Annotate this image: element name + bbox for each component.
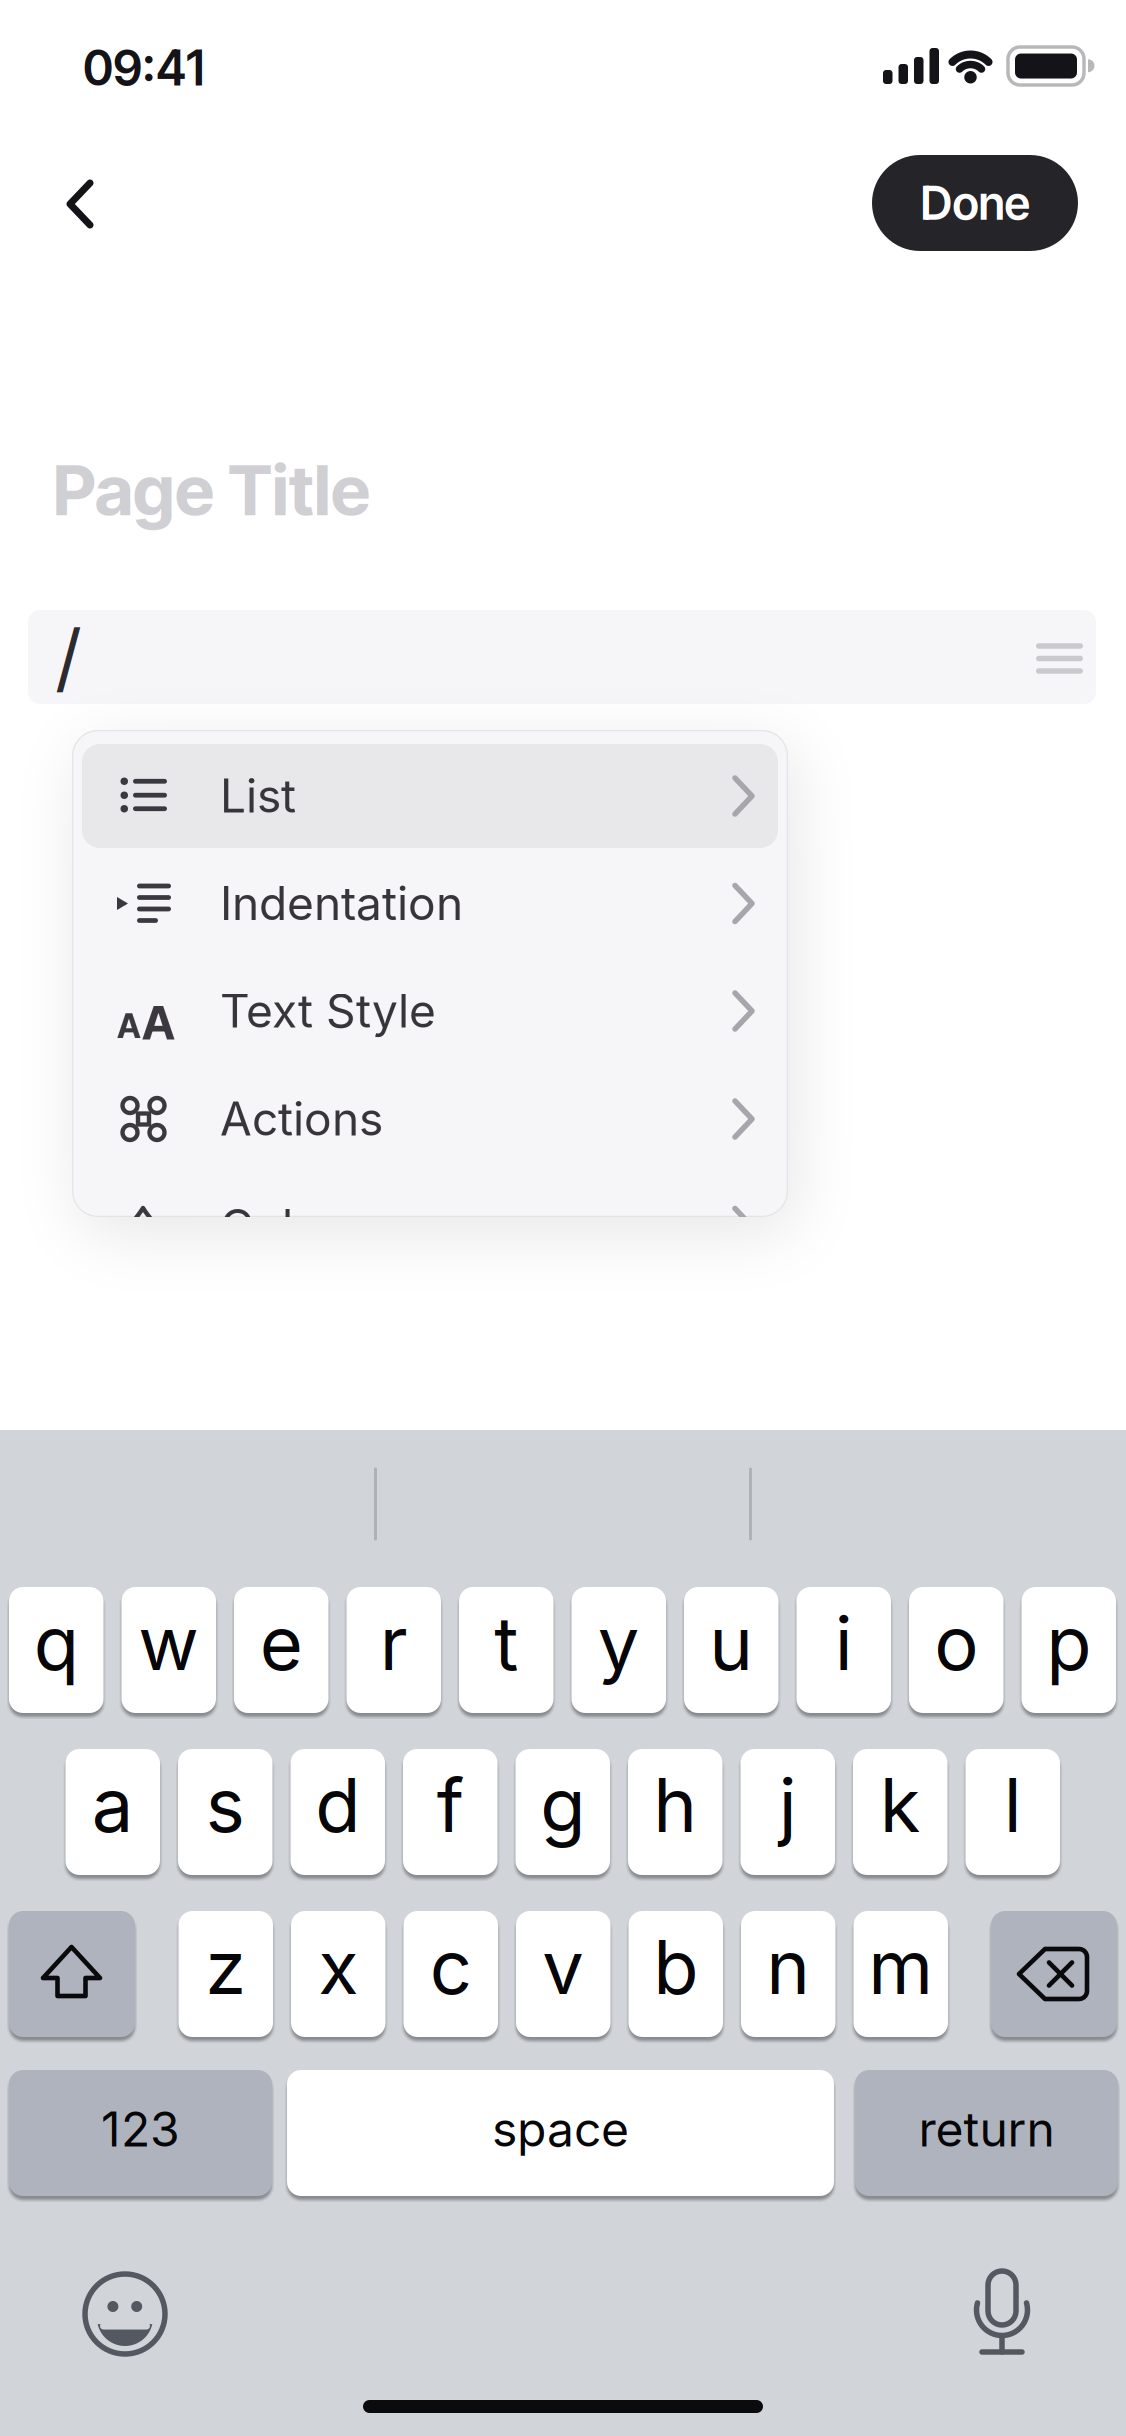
staticText: b <box>653 1922 698 2012</box>
button[interactable]: w <box>121 1587 216 1713</box>
staticText: s <box>206 1760 245 1850</box>
staticText: g <box>540 1760 585 1850</box>
button[interactable]: r <box>346 1587 441 1713</box>
button[interactable]: Emoji <box>70 2259 180 2369</box>
button[interactable]: Color <box>82 1174 778 1278</box>
staticText: t <box>494 1598 518 1688</box>
button[interactable]: u <box>684 1587 778 1713</box>
staticText: y <box>598 1598 640 1688</box>
staticText: o <box>934 1598 978 1688</box>
button[interactable]: Text Style <box>82 959 778 1063</box>
button[interactable]: List <box>82 744 778 848</box>
staticText: e <box>260 1598 303 1688</box>
staticText: d <box>315 1760 360 1850</box>
staticText: u <box>709 1598 753 1688</box>
button[interactable]: k <box>853 1749 947 1875</box>
button[interactable]: q <box>9 1587 103 1713</box>
staticText: n <box>766 1922 810 2012</box>
staticText: Done <box>920 175 1029 231</box>
button[interactable]: 123 <box>9 2070 272 2196</box>
button[interactable]: o <box>909 1587 1003 1713</box>
button[interactable]: Shift <box>9 1911 135 2037</box>
staticText: A <box>142 995 175 1051</box>
button[interactable]: t <box>459 1587 553 1713</box>
staticText: c <box>430 1922 472 2012</box>
staticText: Page Title <box>53 448 370 532</box>
staticText: return <box>918 2100 1054 2158</box>
staticText: z <box>205 1922 246 2012</box>
button[interactable]: v <box>516 1911 610 2037</box>
button[interactable]: y <box>571 1587 666 1713</box>
button[interactable]: g <box>515 1749 610 1875</box>
button[interactable]: Actions <box>82 1067 778 1171</box>
staticText: 09:41 <box>83 39 204 97</box>
button[interactable]: b <box>628 1911 723 2037</box>
staticText: x <box>318 1922 358 2012</box>
button[interactable]: x <box>291 1911 385 2037</box>
staticText: j <box>779 1760 797 1850</box>
button[interactable]: d <box>290 1749 385 1875</box>
staticText: r <box>380 1598 408 1688</box>
staticText: m <box>868 1922 933 2012</box>
staticText: k <box>880 1760 921 1850</box>
button[interactable]: a <box>65 1749 160 1875</box>
button[interactable]: i <box>796 1587 891 1713</box>
button[interactable]: h <box>628 1749 722 1875</box>
staticText: List <box>220 768 296 824</box>
button[interactable]: space <box>287 2070 834 2196</box>
button[interactable]: m <box>853 1911 948 2037</box>
staticText: Text Style <box>220 983 436 1039</box>
staticText: A <box>117 1006 141 1046</box>
staticText: w <box>138 1598 199 1688</box>
staticText: h <box>653 1760 697 1850</box>
staticText: Color <box>220 1198 338 1254</box>
staticText: Indentation <box>220 875 463 931</box>
button[interactable]: e <box>234 1587 328 1713</box>
button[interactable]: z <box>178 1911 273 2037</box>
button[interactable]: c <box>403 1911 498 2037</box>
staticText: / <box>55 612 82 702</box>
staticText: a <box>92 1760 134 1850</box>
button[interactable]: Indentation <box>82 851 778 955</box>
button[interactable]: l <box>965 1749 1060 1875</box>
button[interactable]: Back <box>52 160 132 248</box>
button[interactable]: p <box>1021 1587 1116 1713</box>
staticText: i <box>835 1598 853 1688</box>
staticText: 123 <box>101 2100 180 2158</box>
button[interactable]: Done <box>872 155 1078 251</box>
button[interactable]: j <box>740 1749 835 1875</box>
staticText: q <box>34 1598 79 1688</box>
button[interactable]: f <box>403 1749 497 1875</box>
button[interactable]: Dictation <box>962 2258 1042 2368</box>
button[interactable]: s <box>178 1749 272 1875</box>
staticText: f <box>437 1760 464 1850</box>
button[interactable]: Delete <box>991 1911 1117 2037</box>
staticText: space <box>492 2100 629 2158</box>
button[interactable]: n <box>741 1911 835 2037</box>
staticText: l <box>1004 1760 1022 1850</box>
button[interactable]: return <box>855 2070 1118 2196</box>
staticText: v <box>542 1922 584 2012</box>
staticText: Actions <box>220 1091 383 1147</box>
staticText: p <box>1046 1598 1091 1688</box>
